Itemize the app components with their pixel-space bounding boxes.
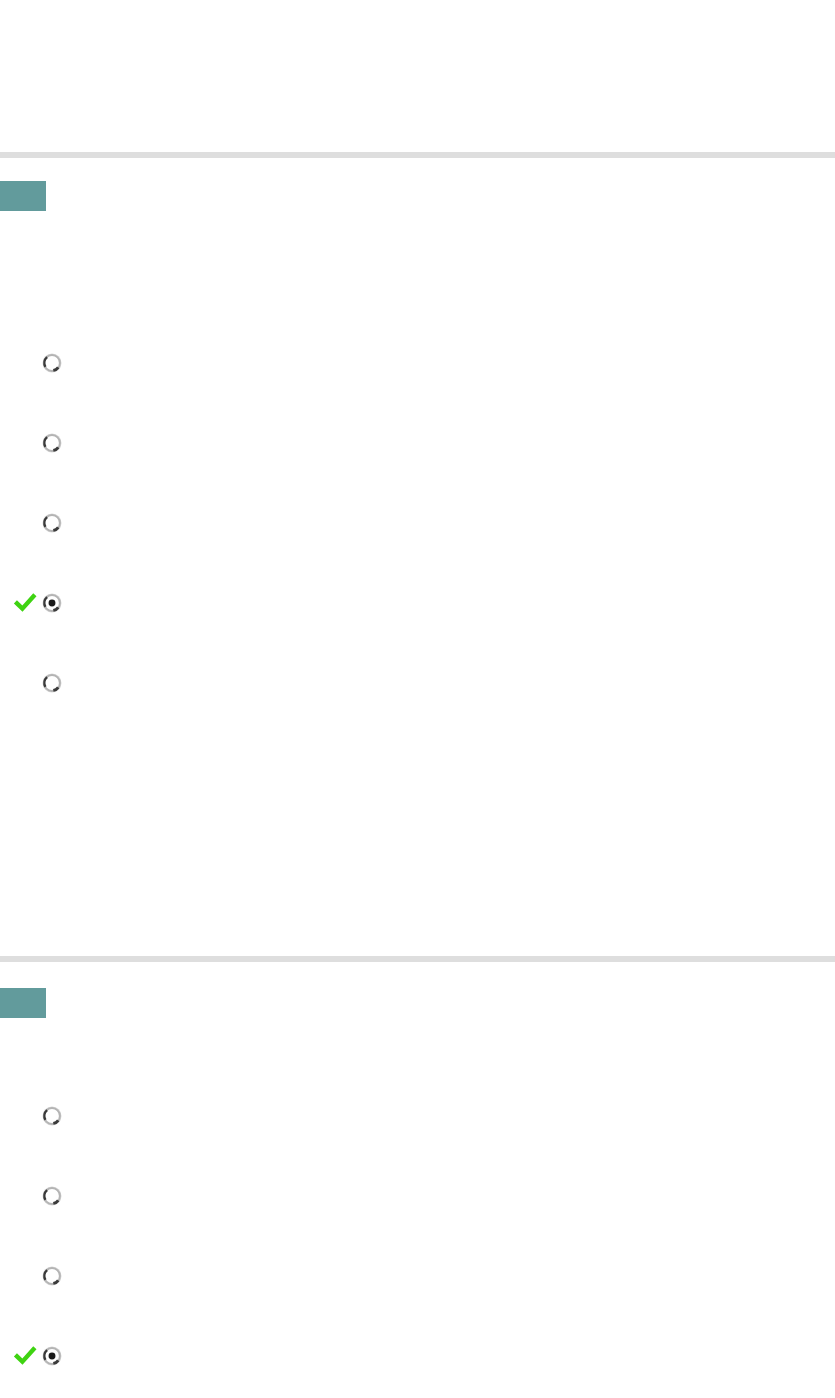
button[interactable]: Option 3 <box>0 506 835 540</box>
button[interactable]: Option 1 <box>0 346 835 380</box>
button[interactable]: Option 2 <box>0 426 835 460</box>
button[interactable]: Option 2 <box>0 1179 835 1213</box>
button[interactable]: Option 5 <box>0 666 835 700</box>
button[interactable]: Option 1 <box>0 1099 835 1133</box>
button[interactable]: Option 3 <box>0 1259 835 1293</box>
button[interactable]: Option 4, correct answer <box>0 1339 835 1373</box>
button[interactable]: Option 4, correct answer <box>0 586 835 620</box>
